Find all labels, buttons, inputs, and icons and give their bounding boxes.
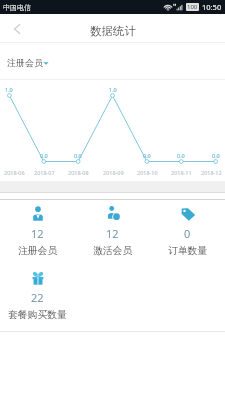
staticText: 0 xyxy=(184,226,191,241)
staticText: 套餐购买数量 xyxy=(8,309,67,321)
staticText: 2018-09 xyxy=(103,169,124,176)
staticText: 1.0 xyxy=(109,86,117,93)
staticText: 100 xyxy=(187,3,198,11)
staticText: 1.0 xyxy=(5,86,13,93)
staticText: 2018-11 xyxy=(171,169,192,176)
staticText: 数据统计 xyxy=(90,24,136,38)
staticText: 0.0 xyxy=(212,152,220,159)
button[interactable]: Back xyxy=(0,14,34,43)
button[interactable]: 22 xyxy=(0,264,75,328)
staticText: 注册会员 xyxy=(7,57,43,68)
button[interactable]: 12 xyxy=(75,200,150,264)
button[interactable]: 12 xyxy=(0,200,75,264)
staticText: 订单数量 xyxy=(168,245,208,257)
staticText: 2018-10 xyxy=(137,169,158,176)
staticText: 2018-12 xyxy=(201,169,222,176)
staticText: 12 xyxy=(106,226,119,241)
staticText: 0.0 xyxy=(177,152,185,159)
staticText: 注册会员 xyxy=(18,245,58,257)
staticText: 2018-08 xyxy=(68,169,89,176)
staticText: 2018-06 xyxy=(4,169,25,176)
staticText: 12 xyxy=(31,226,44,241)
button[interactable]: 注册会员 xyxy=(7,57,49,68)
staticText: 激活会员 xyxy=(93,245,133,257)
staticText: 0.0 xyxy=(74,152,82,159)
staticText: 22 xyxy=(31,290,44,305)
staticText: 0.0 xyxy=(40,152,48,159)
staticText: 0.0 xyxy=(143,152,151,159)
staticText: 2018-07 xyxy=(34,169,55,176)
staticText: 10:50 xyxy=(202,2,222,12)
button[interactable]: 0 xyxy=(150,200,225,264)
staticText: 中国电信 xyxy=(3,3,31,12)
